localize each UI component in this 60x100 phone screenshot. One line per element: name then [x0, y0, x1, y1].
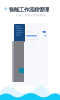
staticText: 智能工作流程管理	[9, 6, 49, 13]
staticText: 让每一次协作都更高效	[16, 13, 46, 17]
